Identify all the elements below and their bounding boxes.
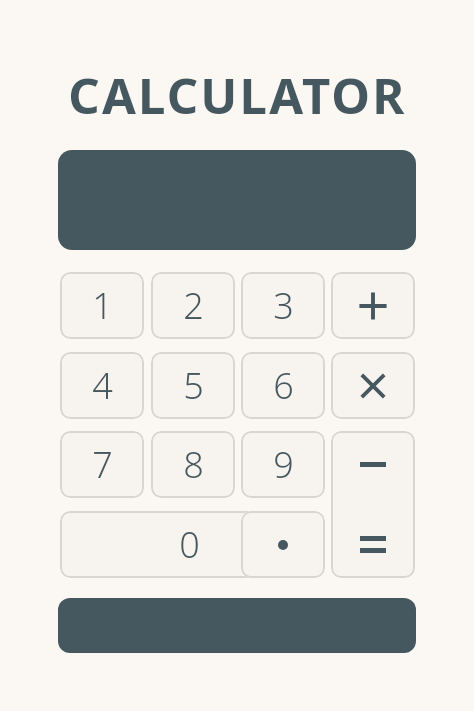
button[interactable]: 1: [60, 272, 144, 339]
button[interactable]: 8: [151, 431, 235, 498]
button[interactable]: 7: [60, 431, 144, 498]
staticText: 0: [179, 520, 200, 569]
button[interactable]: Display: [58, 150, 416, 250]
button[interactable]: 0: [60, 511, 318, 578]
button[interactable]: 5: [151, 352, 235, 419]
button[interactable]: 3: [241, 272, 325, 339]
staticText: 4: [92, 361, 113, 410]
button[interactable]: 9: [241, 431, 325, 498]
staticText: 9: [273, 440, 294, 489]
staticText: CALCULATOR: [68, 62, 407, 129]
button[interactable]: Minus: [331, 431, 415, 498]
staticText: 1: [92, 281, 113, 330]
button[interactable]: Plus: [331, 272, 415, 339]
staticText: 5: [183, 361, 204, 410]
button[interactable]: 4: [60, 352, 144, 419]
staticText: 2: [183, 281, 204, 330]
staticText: 8: [183, 440, 204, 489]
staticText: 3: [273, 281, 294, 330]
button[interactable]: Equals: [331, 511, 415, 578]
staticText: 6: [273, 361, 294, 410]
button[interactable]: Decimal point: [241, 511, 325, 578]
staticText: 7: [92, 440, 113, 489]
button[interactable]: Clear: [58, 598, 416, 653]
button[interactable]: 2: [151, 272, 235, 339]
button[interactable]: 6: [241, 352, 325, 419]
button[interactable]: Multiply: [331, 352, 415, 419]
